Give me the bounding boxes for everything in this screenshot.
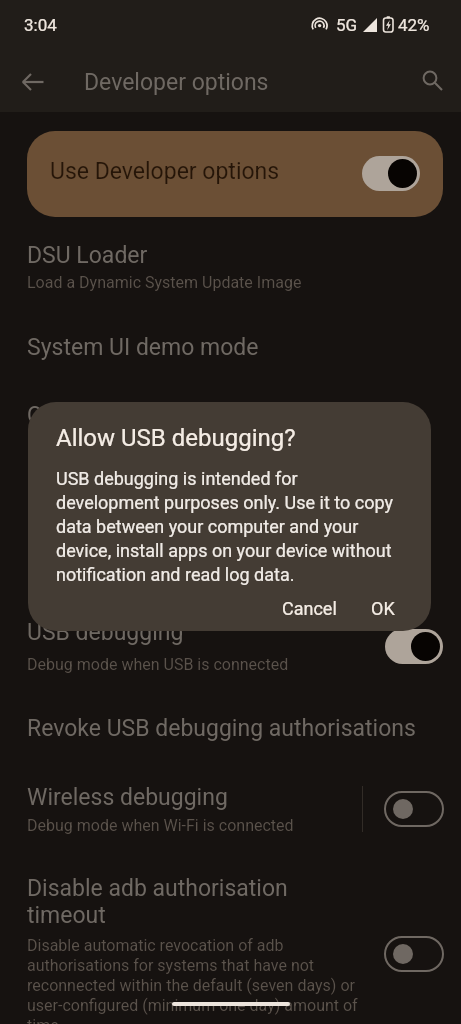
staticText: Use Developer options	[50, 158, 280, 185]
button[interactable]: USB debugging	[0, 619, 461, 646]
staticText: 3:04	[24, 15, 57, 35]
button[interactable]: Toggle off	[385, 937, 443, 971]
button[interactable]: System UI demo mode	[0, 334, 461, 361]
button[interactable]: DSU Loader	[0, 242, 461, 269]
staticText: 42%	[398, 15, 430, 35]
button[interactable]: Wireless debugging	[0, 784, 461, 811]
staticText: System UI demo mode	[27, 334, 259, 361]
staticText: Load a Dynamic System Update Image	[27, 273, 302, 292]
button[interactable]: Toggle on	[385, 629, 443, 664]
staticText: Debug mode when Wi-Fi is connected	[27, 816, 294, 835]
button[interactable]: Use Developer options	[27, 131, 443, 217]
button[interactable]: Quick settings developer tiles	[0, 402, 461, 429]
staticText: DSU Loader	[27, 242, 148, 269]
button[interactable]: Back	[13, 63, 53, 103]
staticText: Quick settings developer tiles	[27, 402, 327, 429]
button[interactable]: Cancel	[282, 598, 337, 619]
staticText: Allow USB debugging?	[56, 424, 296, 452]
staticText: Wireless debugging	[27, 784, 228, 811]
staticText: USB debugging is intended for developmen…	[56, 468, 393, 585]
staticText: USB debugging	[27, 619, 184, 646]
button[interactable]: OK	[371, 598, 395, 619]
staticText: Developer options	[84, 69, 269, 96]
button[interactable]: Toggle off	[385, 792, 443, 826]
staticText: Disable automatic revocation of adb auth…	[27, 936, 358, 1024]
staticText: Debug mode when USB is connected	[27, 655, 289, 674]
button[interactable]: Toggle on	[362, 156, 420, 191]
staticText: 5G	[336, 15, 358, 35]
staticText: Revoke USB debugging authorisations	[27, 715, 416, 742]
staticText: Disable adb authorisation timeout	[27, 875, 288, 929]
button[interactable]: Search	[412, 63, 452, 103]
button[interactable]: Revoke USB debugging authorisations	[0, 715, 461, 742]
